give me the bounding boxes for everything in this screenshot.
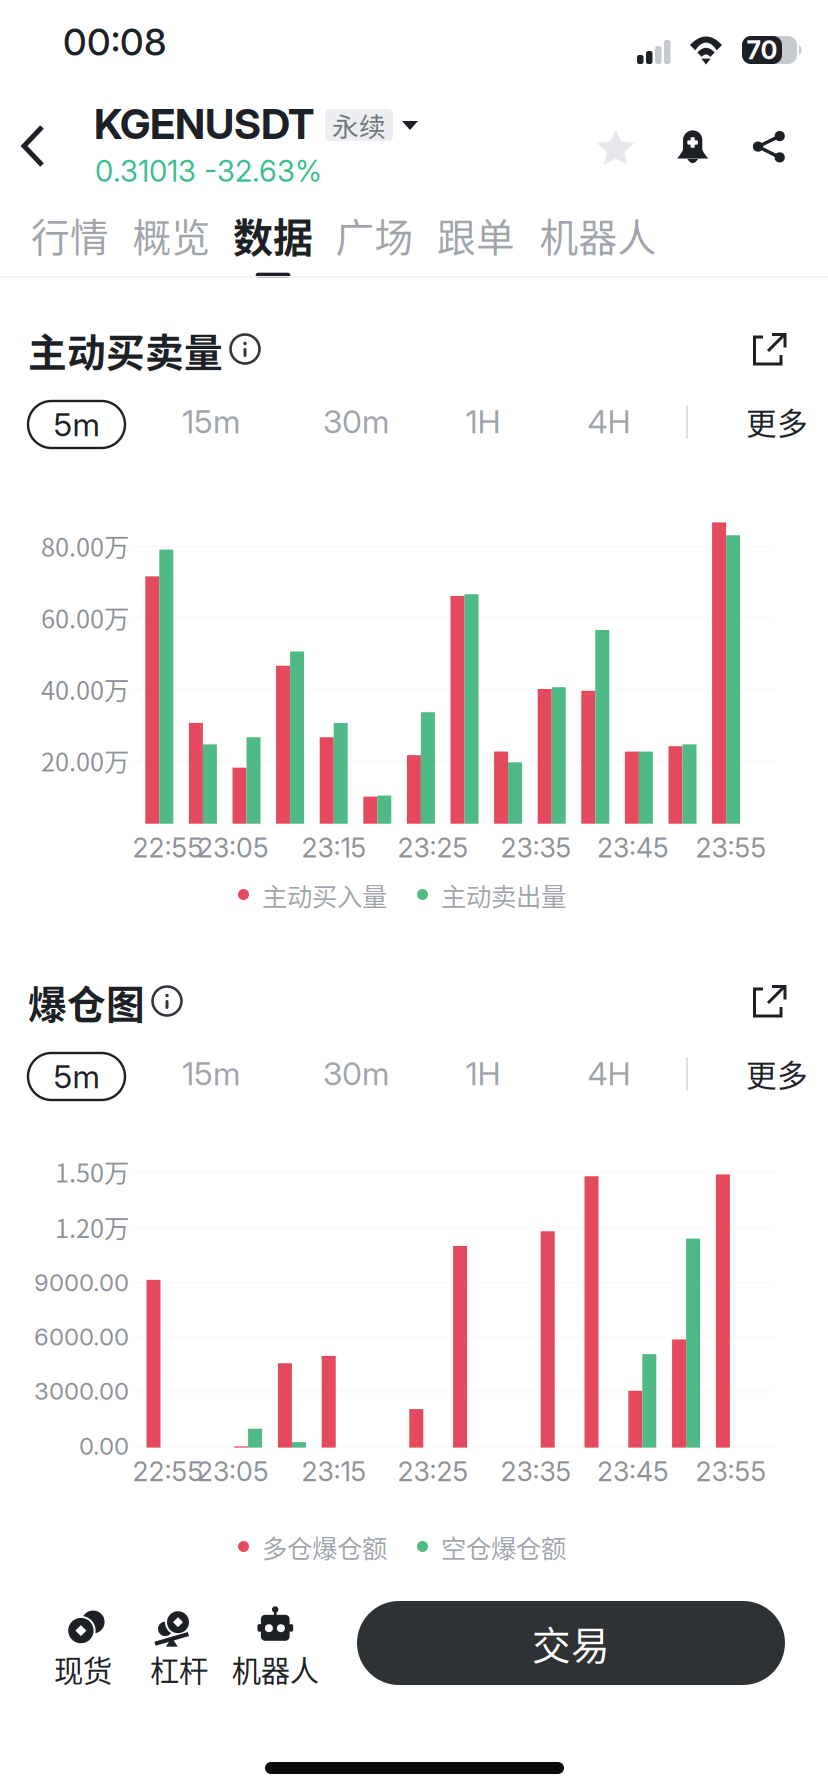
- button[interactable]: 概览: [134, 206, 210, 284]
- staticText: 23:15: [301, 1455, 366, 1488]
- button[interactable]: Back: [12, 112, 86, 180]
- staticText: 主动买卖量: [28, 322, 223, 378]
- staticText: 行情: [31, 207, 109, 263]
- staticText: 23:25: [397, 832, 468, 864]
- button[interactable]: 数据: [235, 206, 311, 284]
- staticText: 22:55: [132, 832, 203, 864]
- staticText: 15m: [182, 1054, 240, 1093]
- button[interactable]: Share: [753, 131, 793, 171]
- staticText: 23:05: [197, 1455, 269, 1488]
- staticText: 00:08: [63, 19, 166, 65]
- staticText: 概览: [133, 207, 211, 263]
- staticText: 空仓爆仓额: [441, 1529, 566, 1565]
- staticText: 0.00: [79, 1432, 129, 1461]
- button[interactable]: 更多: [729, 1050, 825, 1097]
- button[interactable]: 15m: [165, 1050, 257, 1097]
- staticText: 40.00万: [41, 671, 129, 707]
- staticText: 23:25: [397, 1455, 468, 1488]
- button[interactable]: 行情: [32, 206, 108, 284]
- staticText: 跟单: [437, 207, 515, 263]
- button[interactable]: Expand chart: [750, 330, 790, 370]
- staticText: 5m: [53, 1057, 99, 1096]
- staticText: 主动买入量: [262, 877, 387, 913]
- staticText: 15m: [182, 402, 240, 441]
- staticText: 23:45: [597, 1455, 669, 1488]
- staticText: 20.00万: [41, 742, 129, 779]
- staticText: 23:35: [500, 832, 571, 864]
- button[interactable]: 5m: [28, 401, 125, 448]
- button[interactable]: 1H: [437, 398, 529, 445]
- staticText: 现货: [54, 1648, 112, 1690]
- button[interactable]: 跟单: [438, 206, 514, 284]
- staticText: 更多: [746, 1051, 808, 1096]
- staticText: 5m: [53, 405, 99, 444]
- button[interactable]: 机器人: [215, 1601, 335, 1697]
- staticText: 机器人: [232, 1648, 319, 1690]
- button[interactable]: 15m: [165, 398, 257, 445]
- staticText: 多仓爆仓额: [262, 1529, 387, 1565]
- button[interactable]: Favorite: [591, 125, 639, 173]
- button[interactable]: 1H: [437, 1050, 529, 1097]
- staticText: 23:15: [301, 832, 366, 864]
- staticText: 70: [746, 35, 777, 65]
- staticText: 杠杆: [150, 1648, 208, 1690]
- button[interactable]: 交易: [357, 1601, 785, 1685]
- staticText: 0.31013 -32.63%: [95, 153, 322, 189]
- staticText: 6000.00: [34, 1322, 129, 1351]
- button[interactable]: 30m: [310, 1050, 402, 1097]
- button[interactable]: Expand chart: [750, 982, 790, 1022]
- button[interactable]: 4H: [563, 398, 655, 445]
- staticText: 1.20万: [55, 1209, 129, 1245]
- staticText: 广场: [335, 207, 413, 263]
- staticText: 23:55: [695, 832, 766, 864]
- staticText: KGENUSDT: [94, 99, 314, 149]
- button[interactable]: Price alert: [677, 128, 721, 172]
- button[interactable]: 5m: [28, 1053, 125, 1100]
- staticText: 1H: [465, 402, 500, 441]
- button[interactable]: 杠杆: [119, 1601, 239, 1697]
- staticText: 30m: [323, 1054, 389, 1093]
- staticText: 9000.00: [34, 1268, 129, 1297]
- staticText: 80.00万: [41, 527, 129, 564]
- staticText: 数据: [233, 206, 313, 264]
- staticText: 23:05: [197, 832, 269, 864]
- staticText: 3000.00: [34, 1377, 129, 1406]
- button[interactable]: 4H: [563, 1050, 655, 1097]
- staticText: 主动卖出量: [441, 877, 566, 913]
- staticText: 更多: [746, 399, 808, 444]
- staticText: 23:45: [597, 832, 669, 864]
- staticText: 爆仓图: [28, 974, 145, 1030]
- staticText: 4H: [587, 402, 630, 441]
- staticText: 60.00万: [41, 599, 129, 636]
- button[interactable]: 广场: [336, 206, 412, 284]
- staticText: 交易: [532, 1615, 610, 1671]
- button[interactable]: 30m: [310, 398, 402, 445]
- button[interactable]: 机器人: [541, 206, 655, 284]
- staticText: 机器人: [539, 207, 656, 263]
- button[interactable]: 现货: [23, 1601, 143, 1697]
- staticText: 23:55: [695, 1455, 766, 1488]
- staticText: 23:35: [500, 1455, 571, 1488]
- staticText: 1.50万: [55, 1153, 129, 1190]
- staticText: 1H: [465, 1054, 500, 1093]
- button[interactable]: 更多: [729, 398, 825, 445]
- staticText: 30m: [323, 402, 389, 441]
- staticText: 永续: [332, 106, 386, 144]
- staticText: 4H: [587, 1054, 630, 1093]
- staticText: 22:55: [132, 1455, 203, 1488]
